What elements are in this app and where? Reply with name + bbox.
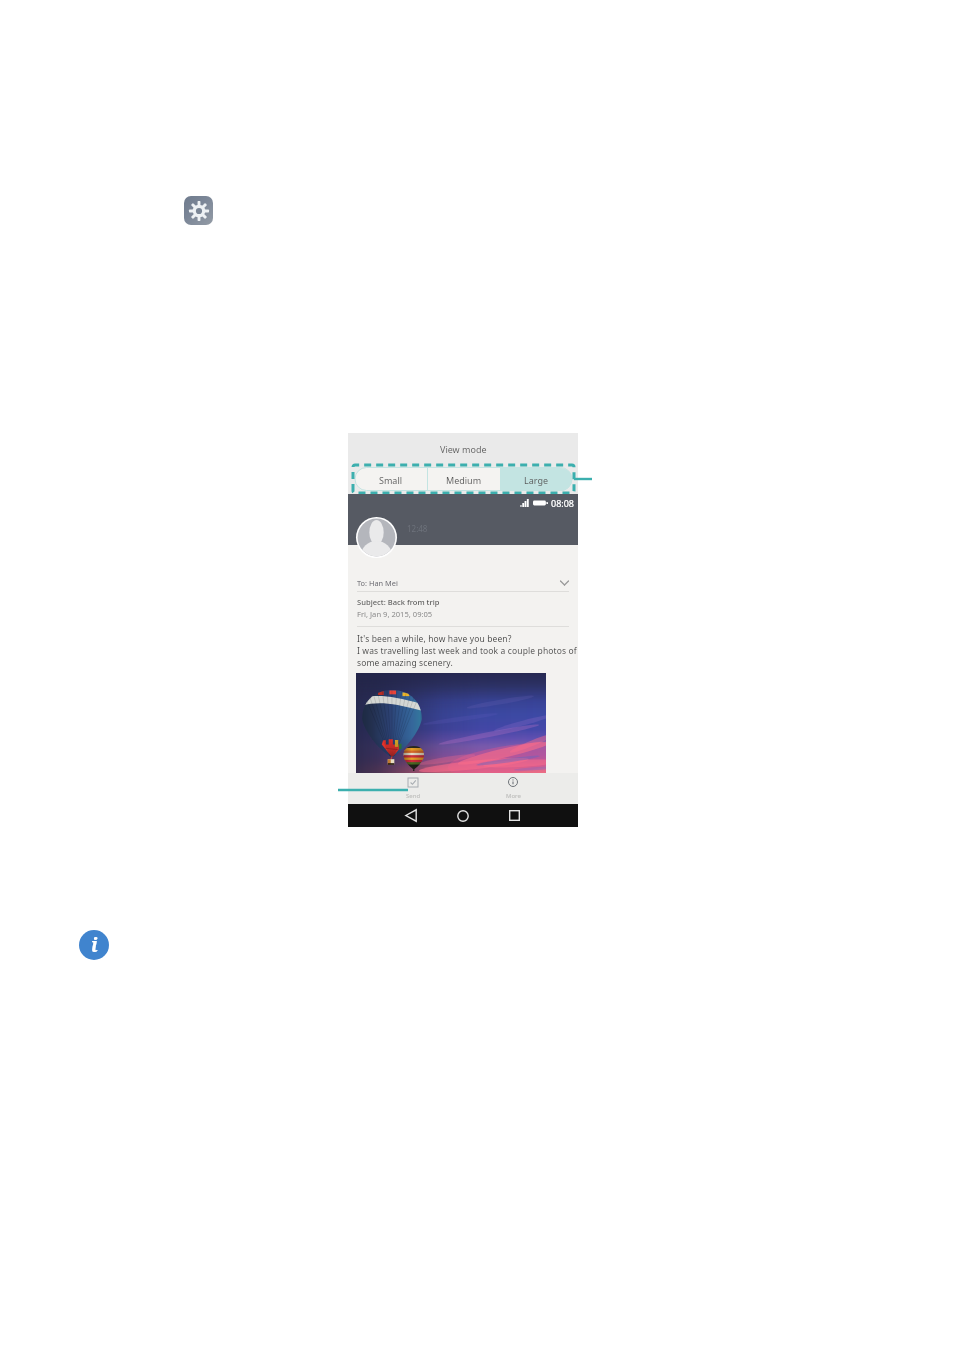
staticText: Large (524, 474, 549, 486)
button[interactable]: Send (363, 773, 463, 804)
staticText: I was travelling last week and took a co… (357, 645, 577, 657)
button[interactable]: Medium (428, 468, 500, 491)
staticText: i (91, 932, 98, 958)
button[interactable]: More (463, 773, 563, 804)
staticText: To: Han Mei (357, 578, 398, 588)
button[interactable]: Back (399, 807, 423, 824)
staticText: It's been a while, how have you been? (357, 633, 512, 645)
staticText: Medium (446, 474, 482, 486)
staticText: Subject: Back from trip (357, 597, 440, 607)
button[interactable]: Large (500, 468, 572, 491)
staticText: Fri, Jan 9, 2015, 09:05 (357, 609, 433, 619)
button[interactable]: Information (79, 930, 109, 960)
staticText: some amazing scenery. (357, 657, 453, 669)
staticText: Send (406, 792, 421, 800)
staticText: View mode (440, 443, 487, 455)
button[interactable]: Recents (502, 807, 526, 824)
staticText: More (506, 792, 521, 800)
staticText: 08:08 (551, 497, 575, 509)
button[interactable]: To: Han Mei (357, 574, 569, 591)
button[interactable]: Small (355, 468, 427, 491)
button[interactable]: Home (451, 807, 475, 824)
button[interactable]: Settings (184, 196, 213, 225)
staticText: 12:48 (407, 523, 428, 534)
staticText: Small (379, 474, 403, 486)
